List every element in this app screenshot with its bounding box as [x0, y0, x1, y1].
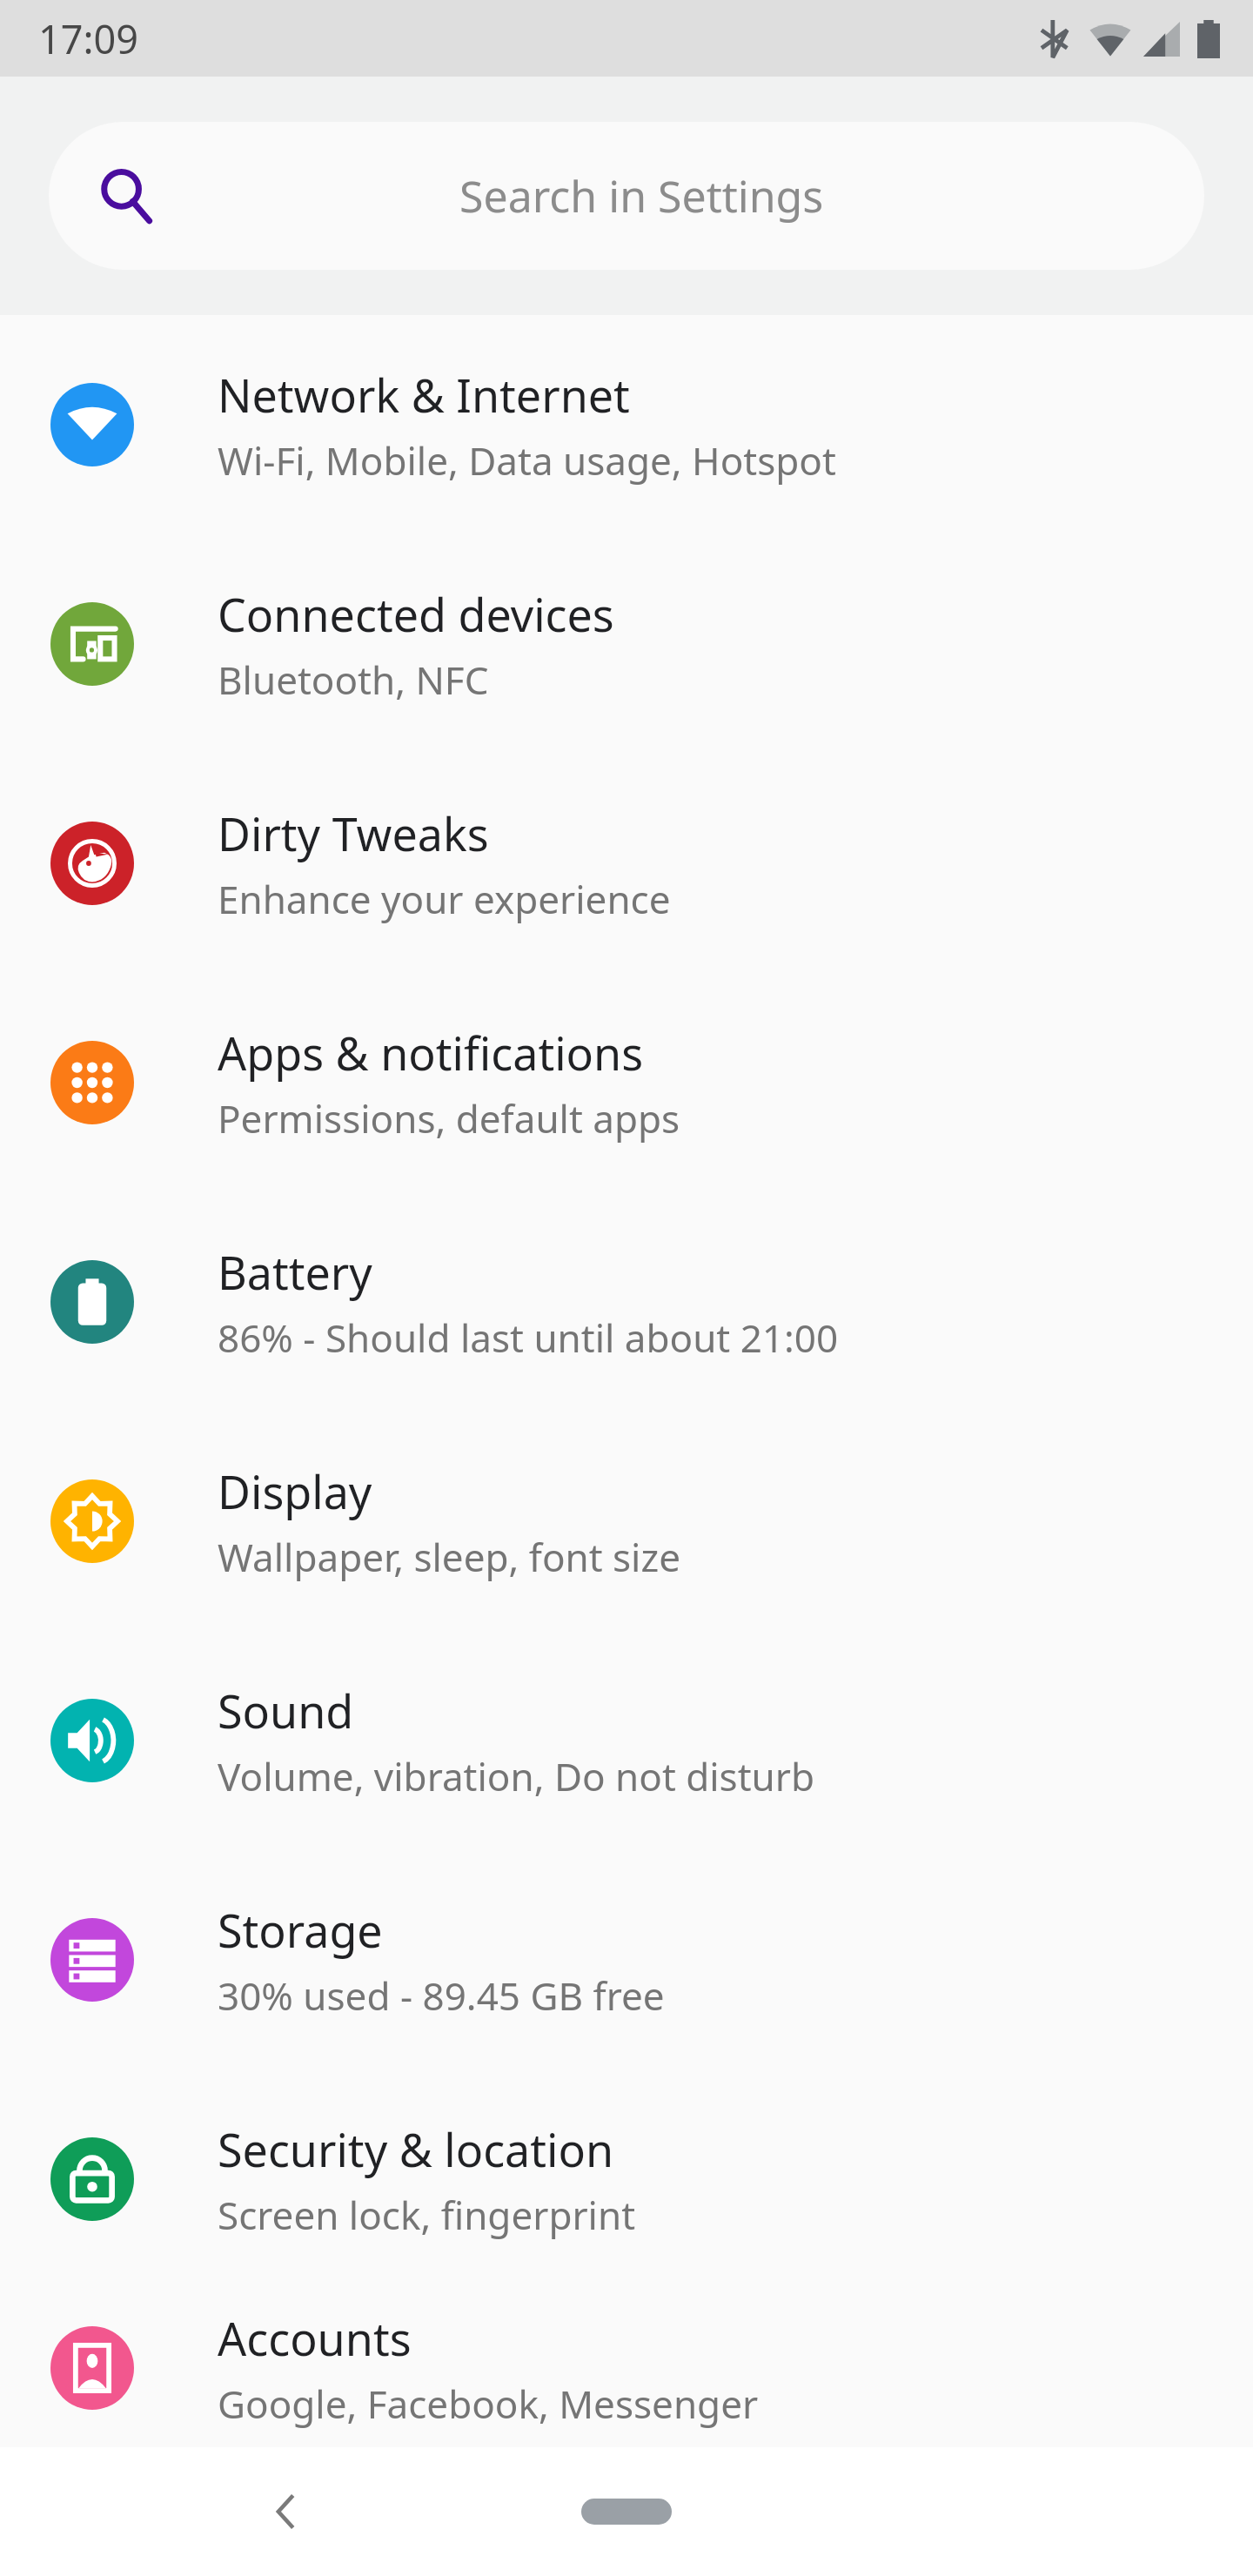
button[interactable]: Sound — [0, 1631, 1253, 1850]
button[interactable]: Back — [239, 2464, 335, 2559]
staticText: Enhance your experience — [218, 873, 671, 925]
button[interactable]: Home — [581, 2499, 672, 2525]
staticText: Search in Settings — [459, 166, 824, 225]
staticText: Storage — [218, 1899, 383, 1961]
staticText: Apps & notifications — [218, 1022, 644, 1083]
staticText: Screen lock, fingerprint — [218, 2189, 636, 2241]
button[interactable]: Accounts — [0, 2289, 1253, 2447]
button[interactable]: Storage — [0, 1850, 1253, 2070]
staticText: Wi-Fi, Mobile, Data usage, Hotspot — [218, 434, 836, 486]
button[interactable]: Battery — [0, 1192, 1253, 1412]
staticText: Volume, vibration, Do not disturb — [218, 1750, 815, 1802]
button[interactable]: Apps & notifications — [0, 973, 1253, 1192]
button[interactable]: Search in Settings — [49, 122, 1204, 270]
staticText: Bluetooth, NFC — [218, 654, 489, 706]
staticText: Security & location — [218, 2118, 614, 2180]
button[interactable]: Network & Internet — [0, 315, 1253, 534]
staticText: 86% - Should last until about 21:00 — [218, 1311, 839, 1364]
staticText: Google, Facebook, Messenger — [218, 2378, 759, 2430]
staticText: 17:09 — [38, 12, 139, 65]
button[interactable]: Connected devices — [0, 534, 1253, 754]
staticText: Dirty Tweaks — [218, 802, 489, 864]
staticText: Network & Internet — [218, 364, 630, 426]
staticText: Battery — [218, 1241, 372, 1303]
staticText: Display — [218, 1460, 372, 1522]
staticText: Permissions, default apps — [218, 1092, 680, 1144]
button[interactable]: Security & location — [0, 2070, 1253, 2289]
staticText: Wallpaper, sleep, font size — [218, 1531, 680, 1583]
staticText: Connected devices — [218, 583, 614, 645]
staticText: Accounts — [218, 2307, 412, 2369]
staticText: Sound — [218, 1680, 354, 1741]
button[interactable]: Dirty Tweaks — [0, 754, 1253, 973]
button[interactable]: Display — [0, 1412, 1253, 1631]
staticText: 30% used - 89.45 GB free — [218, 1969, 665, 2022]
